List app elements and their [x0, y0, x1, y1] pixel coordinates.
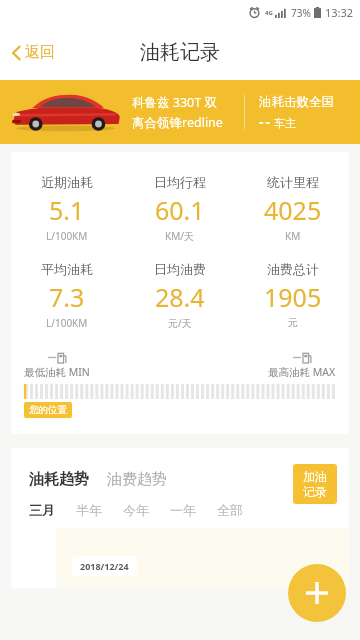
staticText: 离合领锋redline — [132, 114, 223, 131]
staticText: 13:32 — [325, 5, 354, 20]
staticText: 油耗击败全国 — [259, 94, 334, 110]
button[interactable]: 油费总计 — [236, 261, 349, 329]
staticText: 统计里程 — [267, 174, 319, 190]
staticText: 近期油耗 — [41, 174, 93, 190]
staticText: 日均行程 — [154, 174, 206, 190]
staticText: 三月 — [29, 502, 55, 518]
staticText: KM/天 — [165, 229, 194, 243]
staticText: 半年 — [76, 502, 102, 518]
staticText: 7.3 — [49, 280, 85, 314]
button[interactable]: 三月 — [29, 502, 55, 518]
staticText: 全部 — [217, 502, 243, 518]
staticText: 28.4 — [155, 280, 205, 314]
staticText: L/100KM — [46, 229, 88, 243]
staticText: 元 — [288, 316, 298, 329]
staticText: 60.1 — [155, 193, 205, 227]
staticText: 1905 — [264, 280, 322, 314]
button[interactable]: 统计里程 — [236, 174, 349, 243]
staticText: 最高油耗 MAX — [268, 365, 336, 379]
button[interactable]: 日均行程 — [123, 174, 236, 243]
button[interactable]: 油耗趋势 — [29, 470, 89, 489]
staticText: 一年 — [170, 502, 196, 518]
button[interactable]: 日均油费 — [123, 261, 236, 330]
staticText: 4025 — [264, 193, 322, 227]
staticText: 平均油耗 — [41, 261, 93, 277]
button[interactable]: Add fuel record — [288, 564, 346, 622]
button[interactable]: 返回 — [8, 37, 59, 68]
staticText: 5.1 — [49, 193, 85, 227]
button[interactable]: 全部 — [217, 502, 243, 518]
staticText: 油费总计 — [267, 261, 319, 277]
staticText: 油耗记录 — [140, 40, 220, 65]
staticText: 2018/12/24 — [80, 560, 129, 572]
button[interactable]: 一年 — [170, 502, 196, 518]
staticText: 最低油耗 MIN — [24, 365, 90, 379]
staticText: 油费趋势 — [107, 470, 167, 489]
button[interactable]: 加油 — [293, 464, 337, 504]
staticText: 油耗趋势 — [29, 470, 89, 489]
staticText: L/100KM — [46, 316, 88, 330]
staticText: 科鲁兹 330T 双 — [132, 94, 217, 111]
staticText: KM — [285, 229, 301, 243]
button[interactable]: 平均油耗 — [11, 261, 123, 330]
staticText: 记录 — [303, 484, 327, 499]
staticText: 73% — [291, 6, 311, 20]
staticText: 您的位置 — [29, 404, 67, 416]
staticText: 元/天 — [168, 316, 192, 330]
button[interactable]: 您的位置 — [24, 402, 72, 418]
button[interactable]: 半年 — [76, 502, 102, 518]
staticText: 加油 — [303, 469, 327, 484]
staticText: 返回 — [25, 43, 55, 62]
button[interactable]: 油费趋势 — [107, 470, 167, 489]
button[interactable]: 今年 — [123, 502, 149, 518]
staticText: 日均油费 — [154, 261, 206, 277]
staticText: 今年 — [123, 502, 149, 518]
button[interactable]: 近期油耗 — [11, 174, 123, 243]
staticText: 4G — [265, 9, 273, 17]
staticText: 车主 — [274, 116, 296, 130]
